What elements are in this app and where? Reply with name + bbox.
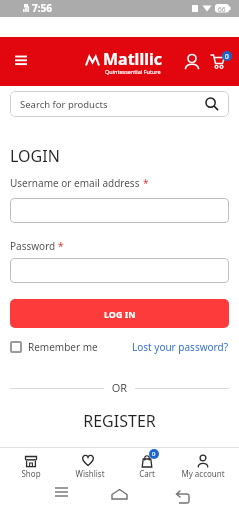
staticText: OR: [0, 380, 239, 395]
staticText: My account: [173, 468, 233, 479]
staticText: 0: [225, 52, 229, 61]
staticText: 7:56: [32, 1, 52, 15]
staticText: 66: [218, 5, 226, 14]
button[interactable]: Lost your password?: [132, 340, 229, 354]
staticText: Matlllic: [103, 48, 162, 70]
button[interactable]: [10, 258, 229, 283]
staticText: Username or email address: [10, 176, 143, 190]
button[interactable]: 0: [117, 449, 177, 482]
staticText: *: [143, 176, 149, 190]
button[interactable]: LOG IN: [10, 299, 229, 328]
button[interactable]: 0: [206, 49, 236, 79]
staticText: Shop: [1, 468, 61, 479]
staticText: REGISTER: [0, 410, 239, 432]
staticText: LOG IN: [104, 308, 136, 320]
button[interactable]: [9, 49, 33, 73]
staticText: Password: [10, 239, 58, 253]
button[interactable]: [10, 198, 229, 223]
button[interactable]: [183, 49, 203, 69]
staticText: Search for products: [20, 98, 108, 111]
button[interactable]: Shop: [1, 449, 61, 482]
staticText: *: [58, 239, 64, 253]
staticText: LOGIN: [10, 145, 60, 167]
staticText: 0: [152, 450, 156, 458]
staticText: Quintessential Future: [105, 68, 161, 75]
staticText: Wishlist: [60, 468, 120, 479]
button[interactable]: My account: [173, 449, 233, 482]
button[interactable]: Search for products: [10, 91, 229, 117]
button[interactable]: Wishlist: [60, 449, 120, 482]
button[interactable]: Remember me: [10, 340, 98, 354]
staticText: Cart: [117, 468, 177, 479]
staticText: Remember me: [28, 340, 98, 354]
